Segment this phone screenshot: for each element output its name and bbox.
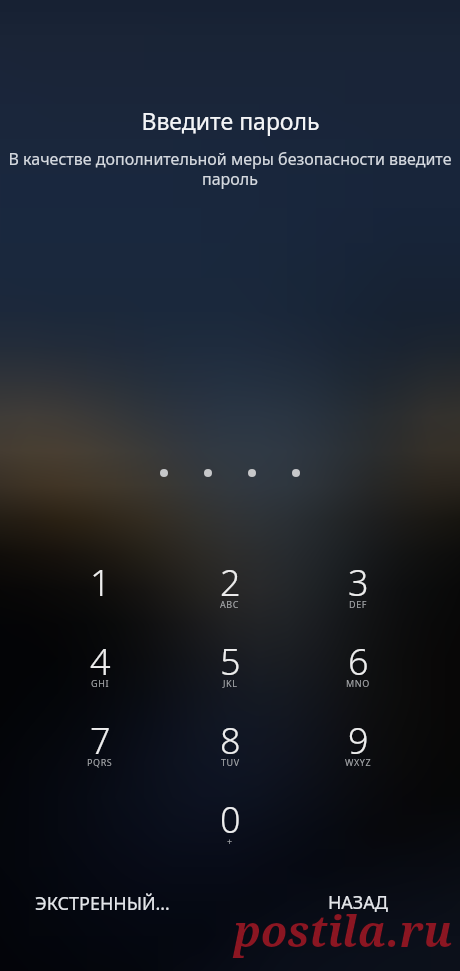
button[interactable]: 1 xyxy=(40,558,160,632)
staticText: ЭКСТРЕННЫЙ… xyxy=(35,891,170,916)
staticText: TUV xyxy=(221,756,240,768)
button[interactable]: 7 xyxy=(40,716,160,790)
staticText: ABC xyxy=(220,598,240,610)
staticText: postila.ru xyxy=(234,901,453,960)
staticText: 6 xyxy=(348,637,369,686)
staticText: 9 xyxy=(348,716,369,765)
staticText: 1 xyxy=(90,558,111,607)
staticText: 5 xyxy=(220,637,241,686)
staticText: JKL xyxy=(223,677,238,689)
button[interactable]: 2 xyxy=(170,558,290,632)
staticText: Введите пароль xyxy=(141,105,320,136)
staticText: MNO xyxy=(346,677,370,689)
button[interactable]: 8 xyxy=(170,716,290,790)
staticText: + xyxy=(227,835,233,847)
button[interactable]: ЭКСТРЕННЫЙ… xyxy=(22,884,182,922)
staticText: 0 xyxy=(220,795,241,844)
staticText: В качестве дополнительной меры безопасно… xyxy=(8,148,452,189)
staticText: НАЗАД xyxy=(328,890,388,915)
button[interactable]: 9 xyxy=(298,716,418,790)
button[interactable]: 5 xyxy=(170,637,290,711)
button[interactable]: 0 xyxy=(170,795,290,869)
staticText: 2 xyxy=(220,558,241,607)
staticText: 7 xyxy=(90,716,111,765)
staticText: GHI xyxy=(91,677,110,689)
button[interactable]: 3 xyxy=(298,558,418,632)
staticText: 4 xyxy=(90,637,111,686)
button[interactable]: 4 xyxy=(40,637,160,711)
staticText: WXYZ xyxy=(345,756,372,768)
button[interactable]: 6 xyxy=(298,637,418,711)
staticText: 3 xyxy=(348,558,369,607)
button[interactable]: НАЗАД xyxy=(298,883,418,921)
staticText: PQRS xyxy=(87,756,113,768)
staticText: 8 xyxy=(220,716,241,765)
staticText: DEF xyxy=(349,598,368,610)
